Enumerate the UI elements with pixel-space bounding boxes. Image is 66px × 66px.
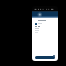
button[interactable] bbox=[35, 56, 55, 59]
button[interactable]: Settings bbox=[53, 55, 55, 57]
button[interactable] bbox=[32, 23, 58, 25]
button[interactable] bbox=[32, 19, 58, 21]
